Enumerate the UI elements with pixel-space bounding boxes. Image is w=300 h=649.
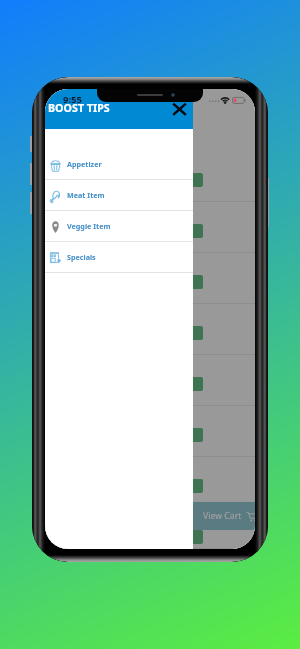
button[interactable]	[45, 508, 255, 549]
staticText: Specials	[67, 252, 96, 262]
button[interactable]	[45, 355, 255, 406]
button[interactable]	[45, 406, 255, 457]
button[interactable]: Close menu	[170, 100, 189, 118]
staticText: 9:55	[63, 93, 82, 106]
button[interactable]: Meat Item	[45, 180, 193, 211]
button[interactable]: View Cart	[45, 502, 255, 530]
button[interactable]	[45, 151, 255, 202]
staticText: Meat Item	[67, 190, 105, 200]
button[interactable]: Veggie Item	[45, 211, 193, 242]
staticText: View Cart	[203, 510, 242, 522]
button[interactable]	[45, 304, 255, 355]
staticText: Veggie Item	[67, 221, 111, 231]
button[interactable]	[45, 202, 255, 253]
button[interactable]: Appetizer	[45, 149, 193, 180]
button[interactable]	[45, 457, 255, 508]
staticText: BOOST TIPS	[48, 101, 110, 116]
staticText: Appetizer	[67, 159, 102, 169]
button[interactable]	[45, 253, 255, 304]
button[interactable]: Specials	[45, 242, 193, 273]
